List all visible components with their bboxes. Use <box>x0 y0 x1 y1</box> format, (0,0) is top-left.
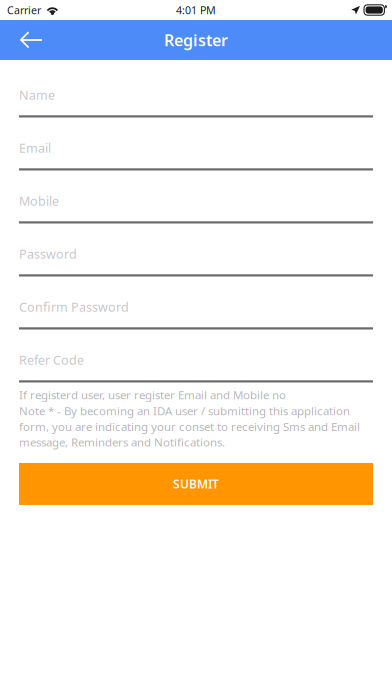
staticText: Refer Code <box>19 351 84 368</box>
staticText: SUBMIT <box>173 476 219 492</box>
staticText: Email <box>19 139 51 156</box>
button[interactable]: SUBMIT <box>19 463 373 505</box>
staticText: Note * - By becoming an IDA user / submi… <box>19 403 360 450</box>
staticText: Name <box>19 86 55 103</box>
staticText: Mobile <box>19 192 59 209</box>
button[interactable]: Back <box>0 20 62 60</box>
staticText: If registerd user, user register Email a… <box>19 387 286 403</box>
staticText: Carrier <box>7 3 41 17</box>
staticText: Confirm Password <box>19 298 129 315</box>
staticText: 4:01 PM <box>176 3 216 17</box>
staticText: Register <box>164 29 228 51</box>
staticText: Password <box>19 245 77 262</box>
